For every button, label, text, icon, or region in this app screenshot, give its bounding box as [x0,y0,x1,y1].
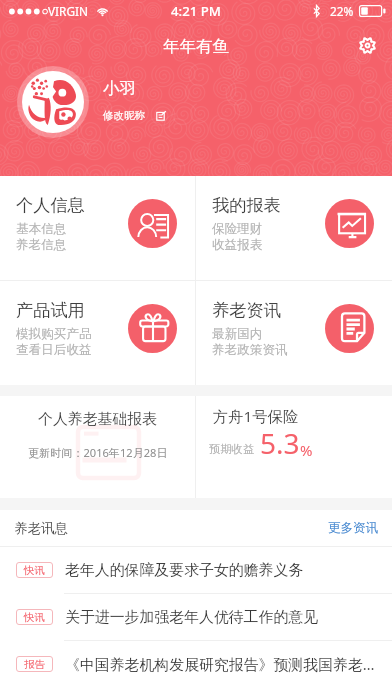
button[interactable]: 更多资讯 [328,520,378,536]
button[interactable]: Settings [352,30,383,61]
staticText: 养老政策资讯 [212,342,288,358]
button[interactable]: 产品试用 [0,281,195,385]
staticText: 老年人的保障及要求子女的赡养义务 [65,561,304,580]
staticText: % [300,440,313,460]
staticText: 收益报表 [212,237,263,253]
staticText: 快讯 [24,611,45,624]
staticText: 《中国养老机构发展研究报告》预测我国养老… [65,654,375,674]
button[interactable]: 个人信息 [0,176,195,280]
staticText: 最新国内 [212,326,263,342]
button[interactable]: 我的报表 [196,176,392,280]
staticText: 小羽 [103,78,136,99]
staticText: 养老资讯 [212,299,281,321]
staticText: 22% [330,3,354,19]
staticText: 模拟购买产品 [16,326,92,342]
button[interactable]: 小羽 [0,59,392,145]
staticText: 我的报表 [212,194,281,216]
staticText: 查看日后收益 [16,342,92,358]
button[interactable]: 方舟1号保险 [196,396,392,498]
button[interactable]: 报告 [0,641,392,687]
staticText: 更多资讯 [328,520,378,536]
staticText: 更新时间：2016年12月28日 [28,445,168,460]
staticText: 基本信息 [16,221,67,237]
staticText: 保险理财 [212,221,263,237]
button[interactable]: 快讯 [0,594,392,640]
staticText: 个人信息 [16,194,85,216]
button[interactable]: 养老资讯 [196,281,392,385]
staticText: 养老讯息 [14,520,68,537]
staticText: 修改昵称 [103,109,145,122]
staticText: 报告 [24,658,45,671]
staticText: 个人养老基础报表 [38,410,158,429]
staticText: 年年有鱼 [163,36,229,57]
button[interactable]: 快讯 [0,547,392,593]
staticText: 4:21 PM [171,2,221,20]
staticText: 快讯 [24,564,45,577]
staticText: 方舟1号保险 [213,406,299,427]
staticText: VIRGIN [48,3,88,19]
staticText: 预期收益 [209,442,255,456]
button[interactable]: 个人养老基础报表 [0,396,195,498]
staticText: 养老信息 [16,237,67,253]
staticText: 5.3 [260,424,300,462]
staticText: 关于进一步加强老年人优待工作的意见 [65,608,319,627]
staticText: 产品试用 [16,299,85,321]
